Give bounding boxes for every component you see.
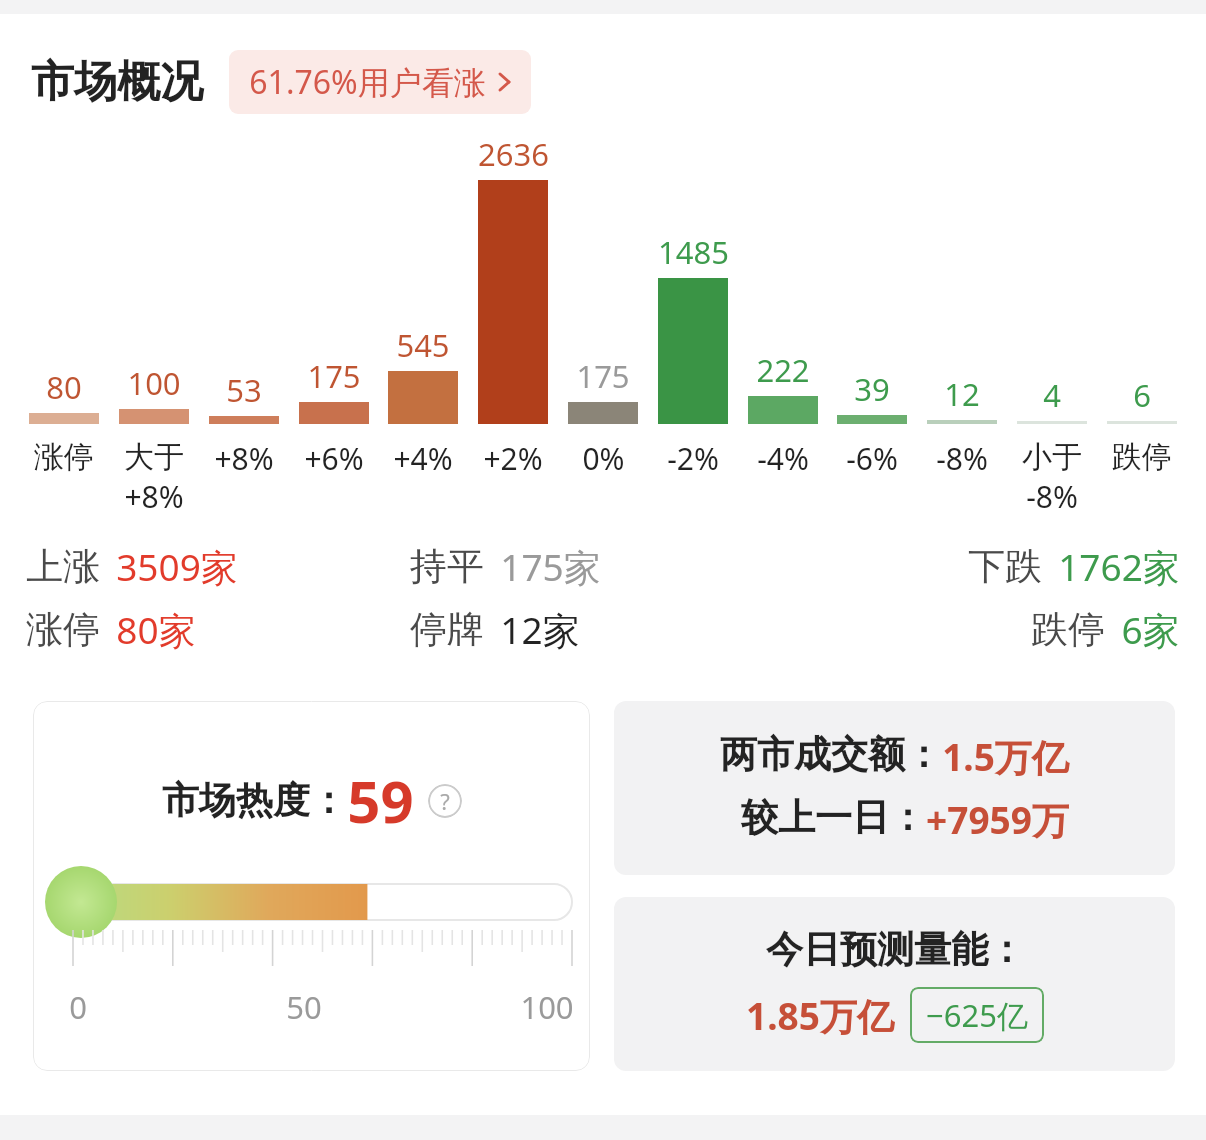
staticText: +4% bbox=[393, 438, 453, 479]
staticText: -8% bbox=[1026, 476, 1078, 517]
staticText: -6% bbox=[846, 438, 898, 479]
staticText: +8% bbox=[124, 476, 184, 517]
staticText: 大于 bbox=[124, 438, 184, 476]
button[interactable]: 53 bbox=[202, 369, 286, 424]
staticText: 2636 bbox=[478, 133, 549, 175]
staticText: 6 bbox=[1133, 374, 1151, 416]
staticText: 1762家 bbox=[1058, 541, 1180, 592]
button[interactable]: 39 bbox=[830, 368, 914, 424]
staticText: 上涨 bbox=[26, 543, 100, 590]
button[interactable]: −625亿 bbox=[910, 987, 1044, 1043]
staticText: 175 bbox=[307, 355, 361, 397]
staticText: 100 bbox=[520, 986, 574, 1028]
staticText: 222 bbox=[756, 349, 810, 391]
button[interactable]: 80 bbox=[22, 366, 106, 424]
staticText: 下跌 bbox=[968, 543, 1042, 590]
button[interactable]: 222 bbox=[741, 349, 825, 424]
staticText: 跌停 bbox=[1112, 438, 1172, 476]
staticText: 1.85万亿 bbox=[746, 990, 894, 1041]
staticText: 小于 bbox=[1022, 438, 1082, 476]
staticText: 61.76%用户看涨 bbox=[249, 60, 486, 104]
staticText: 今日预测量能： bbox=[766, 926, 1025, 973]
button[interactable]: 545 bbox=[381, 324, 465, 424]
staticText: 涨停 bbox=[26, 606, 100, 653]
staticText: 6家 bbox=[1121, 604, 1180, 655]
button[interactable]: 175 bbox=[292, 355, 376, 424]
button[interactable]: 2636 bbox=[471, 133, 555, 424]
staticText: 市场热度： bbox=[162, 777, 347, 824]
button[interactable]: 说明 bbox=[428, 784, 462, 818]
staticText: 59 bbox=[347, 761, 414, 840]
staticText: 175家 bbox=[500, 541, 601, 592]
staticText: 4 bbox=[1043, 374, 1061, 416]
staticText: −625亿 bbox=[926, 994, 1028, 1036]
staticText: +7959万 bbox=[926, 794, 1069, 845]
staticText: -8% bbox=[936, 438, 988, 479]
staticText: -2% bbox=[667, 438, 719, 479]
staticText: 0 bbox=[69, 986, 87, 1028]
button[interactable]: 1485 bbox=[651, 231, 735, 424]
staticText: 持平 bbox=[410, 543, 484, 590]
button[interactable]: 4 bbox=[1010, 374, 1094, 424]
button[interactable]: 两市成交额： bbox=[614, 701, 1175, 875]
staticText: 50 bbox=[286, 986, 322, 1028]
button[interactable]: 市场热度： bbox=[33, 701, 590, 1071]
staticText: 3509家 bbox=[116, 541, 238, 592]
button[interactable]: 今日预测量能： bbox=[614, 897, 1175, 1071]
staticText: 80 bbox=[46, 366, 82, 408]
staticText: +2% bbox=[483, 438, 543, 479]
staticText: 涨停 bbox=[34, 438, 94, 476]
staticText: +6% bbox=[304, 438, 364, 479]
button[interactable]: 12 bbox=[920, 373, 1004, 424]
staticText: 1.5万亿 bbox=[942, 731, 1069, 782]
staticText: 停牌 bbox=[410, 606, 484, 653]
staticText: 1485 bbox=[658, 231, 729, 273]
staticText: -4% bbox=[757, 438, 809, 479]
staticText: 39 bbox=[854, 368, 890, 410]
button[interactable]: 6 bbox=[1100, 374, 1184, 424]
button[interactable]: 175 bbox=[561, 355, 645, 424]
staticText: 545 bbox=[396, 324, 450, 366]
staticText: 53 bbox=[226, 369, 262, 411]
staticText: 0% bbox=[582, 438, 625, 479]
staticText: 100 bbox=[127, 362, 181, 404]
staticText: ? bbox=[440, 786, 450, 816]
button[interactable]: 61.76%用户看涨 bbox=[229, 50, 531, 114]
staticText: 175 bbox=[576, 355, 630, 397]
staticText: 12家 bbox=[500, 604, 580, 655]
staticText: 市场概况 bbox=[31, 55, 203, 109]
staticText: 两市成交额： bbox=[720, 731, 942, 778]
button[interactable]: 100 bbox=[112, 362, 196, 424]
staticText: 跌停 bbox=[1031, 606, 1105, 653]
staticText: +8% bbox=[214, 438, 274, 479]
staticText: 12 bbox=[944, 373, 980, 415]
staticText: 较上一日： bbox=[741, 794, 926, 841]
staticText: 80家 bbox=[116, 604, 196, 655]
